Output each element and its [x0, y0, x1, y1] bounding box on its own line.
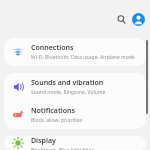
- staticText: Notifications: [31, 106, 75, 116]
- staticText: Display: [31, 136, 56, 146]
- button[interactable]: Samsung account: [132, 13, 145, 26]
- staticText: Connections: [31, 43, 74, 53]
- button[interactable]: Search: [114, 12, 129, 27]
- button[interactable]: Connections: [4, 38, 146, 66]
- button[interactable]: Notifications: [4, 101, 146, 129]
- staticText: Sounds and vibration: [31, 78, 104, 88]
- staticText: Sound mode, Ringtone, Volume: [31, 89, 106, 96]
- button[interactable]: Sounds and vibration: [4, 73, 146, 101]
- staticText: Wi-Fi, Bluetooth, Data usage, Airplane m…: [31, 54, 135, 61]
- staticText: Brightness, Blue light filter: [31, 147, 94, 150]
- staticText: Block, allow, prioritize: [31, 117, 83, 124]
- button[interactable]: Display: [4, 136, 146, 150]
